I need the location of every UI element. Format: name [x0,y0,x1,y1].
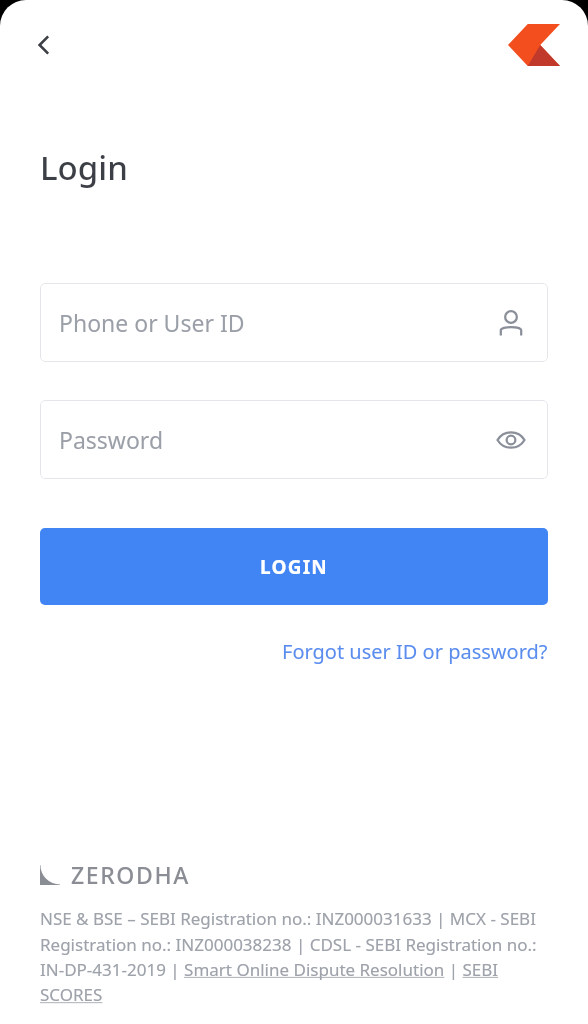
staticText: LOGIN [260,554,328,580]
staticText: Login [40,145,128,190]
other: Kite logo [508,24,560,66]
button[interactable]: Password [40,400,548,479]
button[interactable]: Phone or User ID [40,283,548,362]
staticText: Forgot user ID or password? [282,638,548,665]
button[interactable]: LOGIN [40,528,548,605]
staticText: ZERODHA [71,859,190,890]
button[interactable]: Back [18,19,70,71]
button[interactable]: NSE & BSE – SEBI Registration no.: INZ00… [40,907,560,1006]
button[interactable]: Forgot user ID or password? [282,638,548,665]
staticText: Password [59,424,164,455]
staticText: Phone or User ID [59,307,245,338]
